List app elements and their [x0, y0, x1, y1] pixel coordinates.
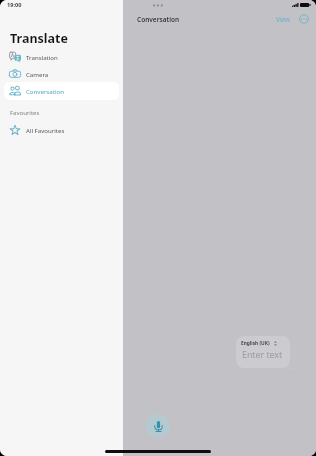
button[interactable]: View — [276, 15, 291, 24]
staticText: Camera — [26, 70, 49, 78]
button[interactable]: Microphone — [146, 414, 170, 438]
staticText: 19:00 — [7, 1, 22, 9]
button[interactable]: Conversation — [4, 82, 119, 100]
staticText: Translation — [26, 53, 58, 61]
button[interactable]: More options — [299, 14, 309, 24]
staticText: Enter text — [242, 349, 283, 361]
button[interactable]: All Favourites — [4, 121, 119, 139]
staticText: View — [276, 15, 291, 24]
button[interactable]: Translation — [4, 48, 119, 66]
staticText: English (UK) — [241, 340, 270, 347]
staticText: Favourites — [10, 109, 40, 117]
button[interactable]: Camera — [4, 65, 119, 83]
staticText: Translate — [10, 30, 68, 47]
staticText: All Favourites — [26, 126, 65, 134]
staticText: Conversation — [137, 15, 180, 24]
button[interactable]: English (UK) — [236, 336, 293, 369]
staticText: Conversation — [26, 87, 64, 95]
